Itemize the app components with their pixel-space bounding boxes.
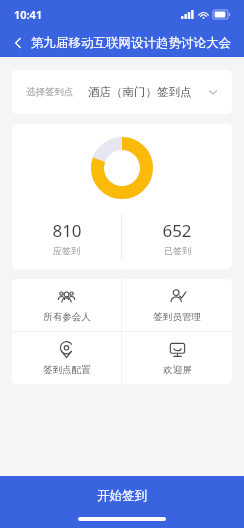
button[interactable]: 所有参会人 <box>12 279 121 331</box>
button[interactable]: 选择签到点 <box>12 70 232 114</box>
staticText: 652 <box>162 219 192 242</box>
staticText: 已签到 <box>164 245 191 256</box>
button[interactable]: 欢迎屏 <box>122 332 232 384</box>
button[interactable]: 开始签到 <box>0 476 244 528</box>
button[interactable]: 签到点配置 <box>12 332 121 384</box>
staticText: 选择签到点 <box>26 86 74 98</box>
staticText: 第九届移动互联网设计趋势讨论大会 <box>31 35 231 51</box>
staticText: 签到员管理 <box>153 311 201 323</box>
staticText: 欢迎屏 <box>163 364 192 376</box>
staticText: 10:41 <box>14 7 43 22</box>
button[interactable]: 签到员管理 <box>122 279 232 331</box>
staticText: 810 <box>52 219 82 242</box>
button[interactable]: Back <box>8 33 28 53</box>
staticText: 所有参会人 <box>43 311 91 323</box>
staticText: 开始签到 <box>97 488 147 504</box>
staticText: 酒店（南门）签到点 <box>88 85 192 99</box>
staticText: 签到点配置 <box>43 364 91 376</box>
staticText: 应签到 <box>53 245 80 256</box>
